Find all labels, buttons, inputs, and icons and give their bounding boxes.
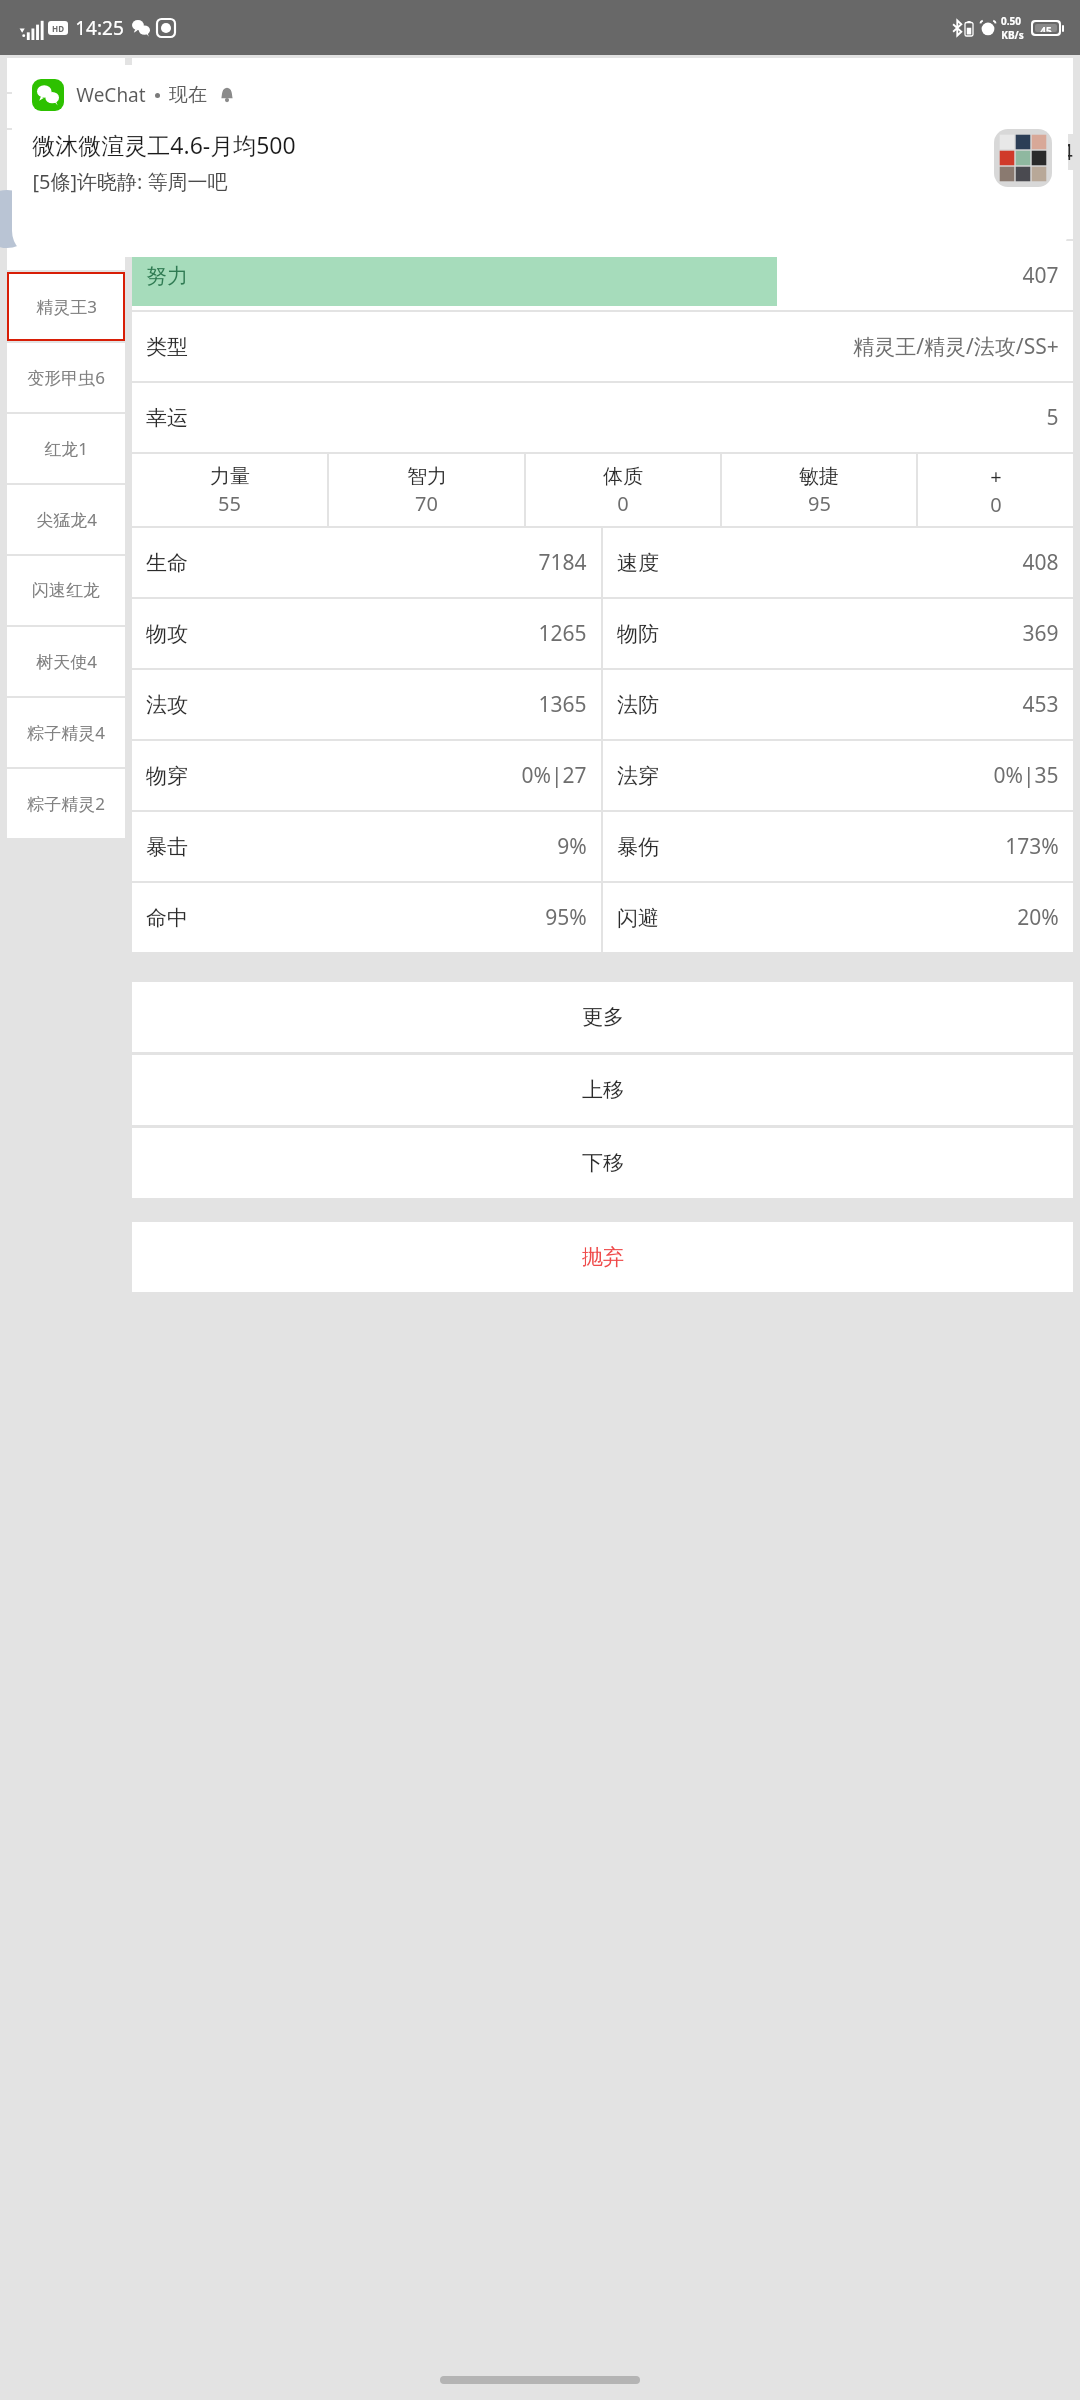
staticText: 闪速红龙 [32, 580, 100, 601]
staticText: 0.50 [1001, 14, 1021, 28]
staticText: 408 [1022, 548, 1059, 577]
button[interactable]: 物穿 [146, 741, 587, 810]
button[interactable]: 更多 [132, 982, 1073, 1052]
button[interactable]: + [918, 454, 1073, 526]
staticText: 精灵王/精灵/法攻/SS+ [853, 332, 1059, 361]
button[interactable]: 物防 [617, 599, 1059, 668]
staticText: 法防 [617, 692, 659, 718]
staticText: 力量 [210, 464, 250, 489]
staticText: 属性 [230, 84, 270, 109]
button[interactable]: 智力 [329, 454, 524, 526]
staticText: 精灵王3 [36, 295, 97, 318]
button[interactable]: ss猫 [7, 201, 125, 270]
button[interactable]: 法攻 [146, 670, 587, 739]
button[interactable]: 精灵王3 [7, 272, 125, 341]
staticText: 小菜狗56 [31, 153, 102, 176]
button[interactable]: 生命 [146, 528, 587, 597]
staticText: KB/s [1001, 28, 1024, 42]
button[interactable]: 努力 [132, 241, 1073, 310]
button[interactable]: 闪速红龙 [7, 556, 125, 625]
staticText: 智力 [407, 464, 447, 489]
staticText: 法攻 [146, 692, 188, 718]
button[interactable]: 筛选 [7, 58, 125, 92]
staticText: 努力 [146, 263, 188, 289]
button[interactable]: WeChat [12, 65, 1068, 257]
staticText: HD [52, 23, 64, 34]
staticText: 生命 [146, 550, 188, 576]
staticText: 453 [1022, 690, 1059, 719]
button[interactable]: 抛弃 [132, 1222, 1073, 1292]
button[interactable]: 尖猛龙4 [7, 485, 125, 554]
staticText: 法穿 [617, 763, 659, 789]
button[interactable]: 幸运 [146, 383, 1059, 452]
staticText: 变形甲虫6 [27, 366, 105, 389]
button[interactable]: 法穿 [617, 741, 1059, 810]
button[interactable]: Lv [132, 170, 1073, 239]
button[interactable]: 暴伤 [617, 812, 1059, 881]
button[interactable]: 敏捷 [722, 454, 916, 526]
staticText: 70 [415, 490, 438, 517]
staticText: WeChat [76, 82, 146, 108]
staticText: 45 [1040, 24, 1052, 32]
staticText: 1365 [538, 690, 587, 719]
button[interactable]: 上移 [132, 1055, 1073, 1125]
staticText: 命中 [146, 905, 188, 931]
staticText: 筛选 [49, 65, 83, 86]
button[interactable]: 粽子精灵2 [7, 769, 125, 838]
button[interactable]: 职业 [838, 58, 1073, 134]
button[interactable]: 下移 [132, 1128, 1073, 1198]
staticText: + [990, 463, 1002, 490]
button[interactable]: 类型 [146, 312, 1059, 381]
staticText: 14:25 [75, 15, 124, 41]
button[interactable]: 命中 [146, 883, 587, 952]
staticText: 抛弃 [582, 1244, 624, 1270]
button[interactable]: 粽子精灵4 [7, 698, 125, 767]
staticText: 树天使4 [36, 650, 97, 673]
button[interactable]: 树天使4 [7, 627, 125, 696]
button[interactable]: 法防 [617, 670, 1059, 739]
staticText: 暴伤 [617, 834, 659, 860]
button[interactable]: 力量 [132, 454, 327, 526]
button[interactable]: 速度 [617, 528, 1059, 597]
staticText: 95% [545, 903, 587, 932]
staticText: 55 [218, 490, 241, 517]
button[interactable]: 变形甲虫6 [7, 343, 125, 412]
staticText: 精灵王3Lv44 [952, 138, 1073, 167]
staticText: 暴击 [146, 834, 188, 860]
button[interactable]: 闪避 [617, 883, 1059, 952]
staticText: 1265 [538, 619, 587, 648]
staticText: 红龙1 [44, 437, 88, 460]
staticText: 粽子精灵4 [27, 721, 105, 744]
staticText: 9% [557, 832, 587, 861]
staticText: 闪避 [617, 905, 659, 931]
staticText: 类型 [146, 334, 188, 360]
staticText: 407 [1022, 261, 1059, 290]
staticText: 0%|35 [993, 761, 1059, 790]
staticText: 幸运 [146, 405, 188, 431]
staticText: 5 [1046, 403, 1059, 432]
button[interactable]: 小菜狗56 [7, 130, 125, 199]
staticText: 173% [1005, 832, 1059, 861]
staticText: 体质 [603, 464, 643, 489]
staticText: 尖猛龙4 [36, 508, 97, 531]
staticText: 现在 [169, 83, 207, 107]
button[interactable]: 暴击 [146, 812, 587, 881]
staticText: 20% [1017, 903, 1059, 932]
button[interactable]: 一键抛弃 [7, 94, 125, 128]
staticText: 下移 [582, 1150, 624, 1176]
button[interactable]: 物攻 [146, 599, 587, 668]
button[interactable]: 体质 [526, 454, 720, 526]
staticText: 更多 [582, 1004, 624, 1030]
button[interactable]: 红龙1 [7, 414, 125, 483]
staticText: 95 [808, 490, 831, 517]
staticText: 粽子精灵2 [27, 792, 105, 815]
button[interactable]: 属性 [132, 58, 368, 134]
staticText: 速度 [617, 550, 659, 576]
